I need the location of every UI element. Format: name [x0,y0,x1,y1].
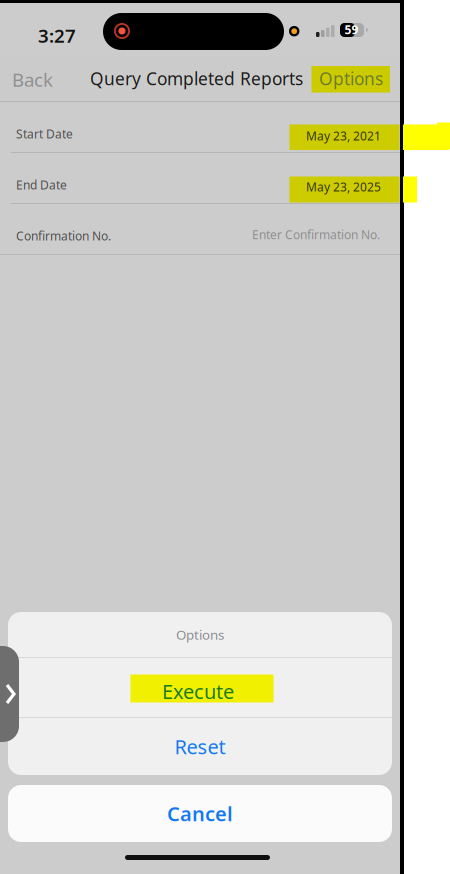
button[interactable]: Cancel [8,785,392,842]
staticText: End Date [16,177,67,193]
button[interactable]: Options [0,56,80,102]
button[interactable]: End Date [0,154,400,205]
staticText: Execute [162,678,234,705]
staticText: Cancel [167,800,233,827]
staticText: Confirmation No. [16,228,111,244]
button[interactable]: Reset [8,718,392,775]
staticText: May 23, 2021 [305,125,380,141]
staticText: May 23, 2021 [306,128,381,144]
staticText: Options [319,67,383,90]
staticText: Options [176,626,224,643]
staticText: May 23, 2025 [306,179,381,195]
staticText: 59 [344,21,358,37]
button[interactable]: Expand side panel [0,646,19,742]
button[interactable]: Start Date [0,103,400,154]
button[interactable]: Back [0,56,74,102]
staticText: Reset [174,733,225,760]
staticText: Enter Confirmation No. [252,226,380,242]
staticText: 3:27 [38,23,76,48]
staticText: Options [319,67,383,90]
staticText: Start Date [16,126,73,142]
staticText: Back [12,67,53,92]
button[interactable]: Execute [8,658,392,717]
staticText: Execute [164,674,236,701]
button[interactable]: Confirmation No. [0,205,400,256]
staticText: Query Completed Reports [90,67,303,90]
staticText: May 23, 2025 [305,176,380,192]
